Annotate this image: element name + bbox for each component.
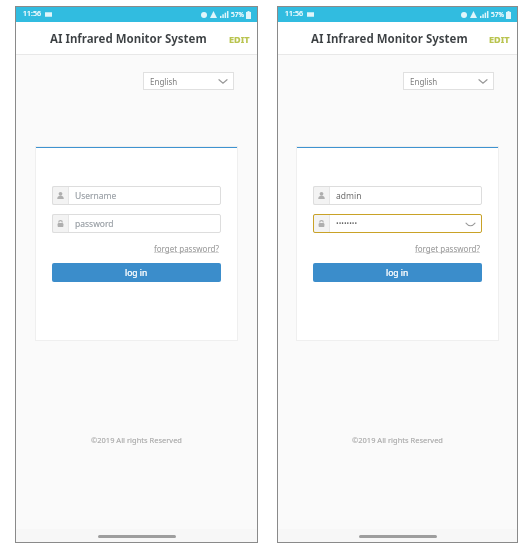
button[interactable]: password (52, 214, 221, 233)
button[interactable]: EDIT (481, 27, 518, 51)
button[interactable]: EDIT (221, 27, 258, 51)
button[interactable]: English (403, 72, 494, 90)
button[interactable]: log in (313, 263, 482, 282)
button[interactable]: •••••••• (313, 214, 482, 233)
staticText: 11:56 (23, 9, 41, 19)
staticText: 11:56 (285, 9, 303, 19)
staticText: EDIT (489, 33, 510, 45)
staticText: password (75, 218, 114, 230)
staticText: forget password? (415, 243, 480, 254)
staticText: •••••••• (336, 219, 358, 229)
staticText: AI Infrared Monitor System (50, 31, 207, 47)
staticText: EDIT (229, 33, 250, 45)
button[interactable]: English (143, 72, 234, 90)
staticText: AI Infrared Monitor System (311, 31, 468, 47)
button[interactable]: admin (313, 186, 482, 205)
button[interactable]: Show password (462, 216, 478, 232)
staticText: 57% (491, 10, 504, 19)
staticText: forget password? (154, 243, 219, 254)
staticText: English (410, 76, 438, 87)
staticText: log in (386, 267, 409, 279)
staticText: ©2019 All rights Reserved (277, 435, 518, 445)
staticText: ©2019 All rights Reserved (15, 435, 258, 445)
staticText: English (150, 76, 178, 87)
staticText: 57% (231, 10, 244, 19)
staticText: log in (125, 267, 148, 279)
button[interactable]: forget password? (152, 241, 221, 256)
staticText: Username (75, 190, 117, 202)
button[interactable]: Username (52, 186, 221, 205)
button[interactable]: forget password? (413, 241, 482, 256)
staticText: admin (336, 190, 362, 202)
button[interactable]: log in (52, 263, 221, 282)
